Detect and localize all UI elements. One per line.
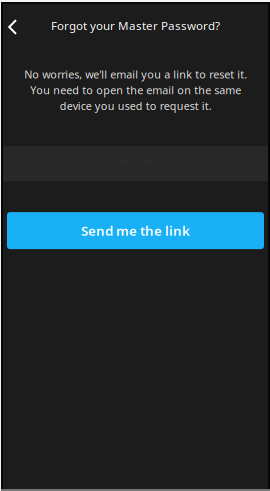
staticText: Forgot your Master Password? bbox=[51, 18, 220, 33]
button[interactable]: Back bbox=[3, 6, 22, 44]
button[interactable]: Send me the link bbox=[7, 212, 264, 249]
staticText: Send me the link bbox=[81, 222, 190, 239]
staticText: No worries, we'll email you a link to re… bbox=[24, 67, 247, 113]
